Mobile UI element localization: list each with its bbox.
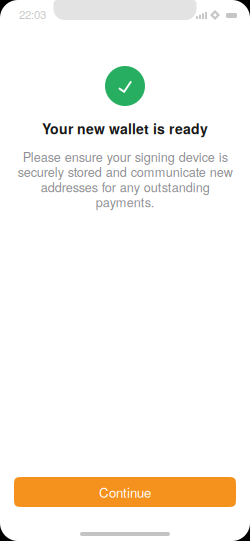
staticText: Please ensure your signing device is sec… [17, 149, 232, 209]
staticText: Continue [99, 482, 151, 502]
button[interactable]: Continue [14, 477, 236, 507]
staticText: Your new wallet is ready [42, 120, 208, 137]
staticText: 22:03 [19, 6, 46, 22]
